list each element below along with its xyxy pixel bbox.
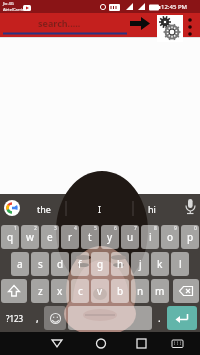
button[interactable]: search..... <box>0 13 200 37</box>
button[interactable]: l <box>171 252 189 276</box>
staticText: 12:45 PM <box>161 3 187 11</box>
staticText: 3 <box>54 225 57 232</box>
button[interactable] <box>173 279 199 303</box>
staticText: w <box>26 230 34 244</box>
button[interactable]: n <box>131 279 149 303</box>
staticText: e <box>47 230 53 244</box>
button[interactable] <box>68 306 152 330</box>
button[interactable]: o <box>161 225 179 249</box>
button[interactable] <box>167 306 197 330</box>
button[interactable]: h <box>111 252 129 276</box>
staticText: x <box>57 284 63 298</box>
button[interactable]: z <box>31 279 49 303</box>
staticText: Jio 4G <box>3 1 14 6</box>
staticText: 8 <box>154 225 157 232</box>
button[interactable]: x <box>51 279 69 303</box>
staticText: m <box>155 284 165 298</box>
button[interactable]: , <box>31 306 43 330</box>
button[interactable]: p <box>181 225 199 249</box>
staticText: c <box>78 284 83 298</box>
staticText: , <box>36 311 39 325</box>
staticText: g <box>97 257 104 271</box>
button[interactable]: ?123 <box>1 306 29 330</box>
staticText: f <box>78 257 82 271</box>
staticText: n <box>137 284 144 298</box>
staticText: i <box>149 230 152 244</box>
staticText: 6 <box>114 225 117 232</box>
staticText: s <box>38 257 43 271</box>
button[interactable]: the <box>24 194 64 223</box>
staticText: a <box>17 257 23 271</box>
button[interactable]: e <box>41 225 59 249</box>
button[interactable]: j <box>131 252 149 276</box>
button[interactable]: k <box>151 252 169 276</box>
button[interactable]: m <box>151 279 169 303</box>
button[interactable]: y <box>101 225 119 249</box>
staticText: 2 <box>34 225 37 232</box>
staticText: 4 <box>74 225 77 232</box>
staticText: y <box>107 230 113 244</box>
button[interactable]: I <box>80 194 120 223</box>
staticText: the <box>37 203 51 215</box>
button[interactable]: g <box>91 252 109 276</box>
staticText: u <box>127 230 134 244</box>
button[interactable]: hi <box>132 194 172 223</box>
staticText: k <box>157 257 163 271</box>
button[interactable]: t <box>81 225 99 249</box>
button[interactable]: f <box>71 252 89 276</box>
staticText: 1 <box>14 225 17 232</box>
button[interactable] <box>133 332 200 355</box>
button[interactable]: r <box>61 225 79 249</box>
staticText: d <box>57 257 64 271</box>
staticText: r <box>68 230 73 244</box>
staticText: z <box>38 284 43 298</box>
staticText: t <box>88 230 92 244</box>
staticText: v <box>97 284 103 298</box>
staticText: . <box>158 311 161 325</box>
staticText: o <box>167 230 174 244</box>
button[interactable]: . <box>153 306 165 330</box>
staticText: 7 <box>134 225 137 232</box>
staticText: h <box>117 257 124 271</box>
staticText: l <box>179 257 182 271</box>
staticText: I <box>98 203 102 215</box>
button[interactable]: u <box>121 225 139 249</box>
staticText: p <box>187 230 194 244</box>
button[interactable]: a <box>11 252 29 276</box>
staticText: 9 <box>174 225 177 232</box>
button[interactable]: b <box>111 279 129 303</box>
button[interactable]: i <box>141 225 159 249</box>
staticText: ?123 <box>6 313 24 324</box>
button[interactable] <box>66 332 133 355</box>
button[interactable] <box>4 200 20 216</box>
staticText: j <box>139 257 142 271</box>
button[interactable]: w <box>21 225 39 249</box>
button[interactable] <box>44 306 66 330</box>
staticText: b <box>117 284 124 298</box>
button[interactable]: d <box>51 252 69 276</box>
button[interactable] <box>1 279 27 303</box>
button[interactable]: c <box>71 279 89 303</box>
staticText: AirtelCarrier <box>3 7 26 12</box>
button[interactable]: v <box>91 279 109 303</box>
staticText: q <box>7 230 14 244</box>
staticText: search..... <box>38 17 81 29</box>
staticText: 5 <box>94 225 97 232</box>
button[interactable] <box>157 15 183 42</box>
button[interactable]: q <box>1 225 19 249</box>
button[interactable]: s <box>31 252 49 276</box>
staticText: hi <box>148 203 156 215</box>
button[interactable] <box>0 332 66 355</box>
staticText: 0 <box>194 225 197 232</box>
